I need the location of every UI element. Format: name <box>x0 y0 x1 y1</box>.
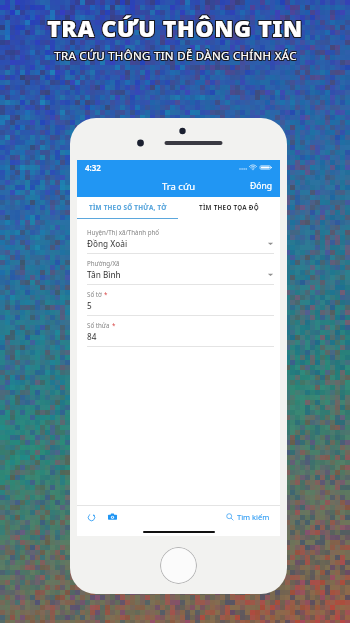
button[interactable]: Home <box>160 547 197 584</box>
staticText: TRA CỨU THÔNG TIN <box>47 13 303 44</box>
staticText: TRA CỨU THÔNG TIN <box>48 11 304 42</box>
button[interactable]: Số tờ <box>77 285 280 316</box>
staticText: TRA CỨU THÔNG TIN <box>46 13 302 44</box>
staticText: TRA CỨU THÔNG TIN DỄ DÀNG CHÍNH XÁC <box>53 49 296 65</box>
staticText: * <box>112 321 116 329</box>
button[interactable]: Phường/Xã <box>77 254 280 285</box>
staticText: TRA CỨU THÔNG TIN DỄ DÀNG CHÍNH XÁC <box>54 47 297 63</box>
staticText: TRA CỨU THÔNG TIN DỄ DÀNG CHÍNH XÁC <box>54 49 297 65</box>
staticText: 84 <box>87 331 274 342</box>
button[interactable]: Đóng <box>243 176 280 196</box>
staticText: TRA CỨU THÔNG TIN DỄ DÀNG CHÍNH XÁC <box>53 48 296 64</box>
staticText: TRA CỨU THÔNG TIN <box>47 12 303 43</box>
button[interactable]: TÌM THEO TỌA ĐỘ <box>178 197 280 218</box>
staticText: Huyện/Thị xã/Thành phố <box>87 228 160 236</box>
button[interactable]: Tìm kiếm <box>224 510 272 524</box>
staticText: Đồng Xoài <box>87 238 267 249</box>
staticText: TRA CỨU THÔNG TIN <box>47 11 303 42</box>
staticText: Tìm kiếm <box>237 512 270 522</box>
staticText: Số tờ <box>87 290 102 298</box>
button[interactable]: Chụp ảnh <box>106 511 119 523</box>
staticText: TRA CỨU THÔNG TIN <box>46 11 302 42</box>
staticText: TRA CỨU THÔNG TIN <box>46 12 302 43</box>
staticText: 5 <box>87 300 274 311</box>
staticText: TRA CỨU THÔNG TIN <box>48 12 304 43</box>
button[interactable]: Làm mới <box>85 511 98 524</box>
button[interactable]: Số thửa <box>77 316 280 347</box>
staticText: Đóng <box>250 180 273 192</box>
staticText: Số thửa <box>87 321 110 329</box>
staticText: 4:32 <box>85 162 101 173</box>
staticText: Phường/Xã <box>87 259 120 267</box>
staticText: Tân Bình <box>87 269 267 280</box>
staticText: Tra cứu <box>162 180 196 193</box>
staticText: TRA CỨU THÔNG TIN DỄ DÀNG CHÍNH XÁC <box>53 47 296 63</box>
button[interactable]: Huyện/Thị xã/Thành phố <box>77 223 280 254</box>
button[interactable]: TÌM THEO SỐ THỬA, TỜ <box>77 197 178 218</box>
staticText: TRA CỨU THÔNG TIN DỄ DÀNG CHÍNH XÁC <box>55 49 298 65</box>
staticText: TRA CỨU THÔNG TIN DỄ DÀNG CHÍNH XÁC <box>55 47 298 63</box>
staticText: TÌM THEO TỌA ĐỘ <box>199 203 259 212</box>
staticText: * <box>104 290 108 298</box>
staticText: TRA CỨU THÔNG TIN DỄ DÀNG CHÍNH XÁC <box>55 48 298 64</box>
staticText: TÌM THEO SỐ THỬA, TỜ <box>89 203 167 212</box>
staticText: TRA CỨU THÔNG TIN DỄ DÀNG CHÍNH XÁC <box>54 48 297 64</box>
staticText: TRA CỨU THÔNG TIN <box>48 13 304 44</box>
